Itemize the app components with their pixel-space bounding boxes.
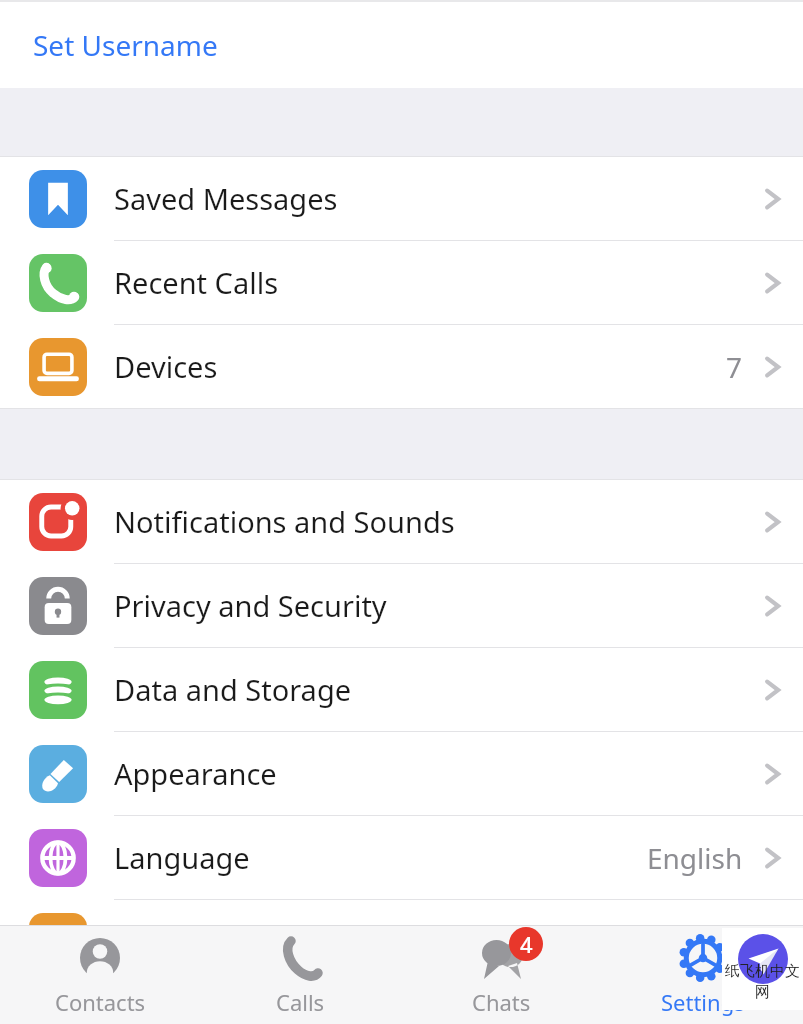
- button[interactable]: Language: [0, 816, 803, 900]
- button[interactable]: Appearance: [0, 732, 803, 816]
- staticText: Devices: [114, 347, 218, 386]
- staticText: Appearance: [114, 754, 277, 793]
- staticText: 4: [520, 929, 533, 959]
- other: Settings: [678, 933, 728, 983]
- staticText: Saved Messages: [114, 179, 338, 218]
- staticText: Set Username: [33, 26, 218, 64]
- staticText: Data and Storage: [114, 670, 352, 709]
- button[interactable]: Calls: [200, 926, 401, 1024]
- button[interactable]: Stickers: [0, 900, 803, 984]
- staticText: Chats: [472, 987, 531, 1017]
- button[interactable]: Data and Storage: [0, 648, 803, 732]
- button[interactable]: Contacts: [0, 926, 200, 1024]
- staticText: 7: [726, 348, 743, 386]
- other: Chats: [477, 933, 527, 983]
- staticText: Privacy and Security: [114, 586, 387, 625]
- button[interactable]: Chats: [401, 926, 602, 1024]
- staticText: Calls: [276, 987, 325, 1017]
- staticText: Stickers: [114, 922, 220, 961]
- staticText: Contacts: [55, 987, 146, 1017]
- button[interactable]: Saved Messages: [0, 157, 803, 241]
- button[interactable]: Recent Calls: [0, 241, 803, 325]
- other: Calls: [276, 933, 326, 983]
- staticText: Settings: [661, 987, 745, 1017]
- button[interactable]: Set Username: [0, 2, 803, 88]
- button[interactable]: Privacy and Security: [0, 564, 803, 648]
- staticText: Recent Calls: [114, 263, 279, 302]
- button[interactable]: Notifications and Sounds: [0, 480, 803, 564]
- staticText: Language: [114, 838, 250, 877]
- staticText: English: [647, 839, 743, 877]
- staticText: 纸飞机中文网: [722, 962, 803, 1002]
- staticText: Notifications and Sounds: [114, 502, 455, 541]
- button[interactable]: Settings: [602, 926, 803, 1024]
- other: Contacts: [75, 933, 125, 983]
- button[interactable]: Devices: [0, 325, 803, 409]
